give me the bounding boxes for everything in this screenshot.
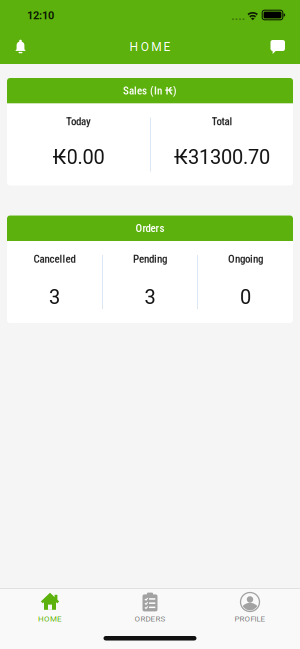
staticText: Cancelled <box>33 252 75 265</box>
staticText: HOME <box>130 40 170 54</box>
staticText: Orders <box>135 222 164 235</box>
button[interactable] <box>14 39 26 53</box>
staticText: ₭0.00 <box>52 145 104 169</box>
staticText: Today <box>66 115 91 128</box>
staticText: ORDERS <box>134 614 165 623</box>
staticText: 0 <box>240 285 251 309</box>
staticText: ₭31300.70 <box>174 145 270 169</box>
staticText: HOME <box>38 614 62 623</box>
staticText: 12:10 <box>27 9 54 22</box>
staticText: Pending <box>133 252 167 265</box>
staticText: 3 <box>49 285 60 309</box>
staticText: Total <box>211 115 232 128</box>
button[interactable]: PROFILE <box>200 592 300 623</box>
staticText: Ongoing <box>228 252 263 265</box>
staticText: PROFILE <box>234 614 265 623</box>
button[interactable]: HOME <box>0 592 100 623</box>
button[interactable] <box>270 40 285 54</box>
staticText: 3 <box>144 285 155 309</box>
staticText: Sales (In ₭) <box>123 84 177 97</box>
button[interactable]: ORDERS <box>100 592 200 623</box>
